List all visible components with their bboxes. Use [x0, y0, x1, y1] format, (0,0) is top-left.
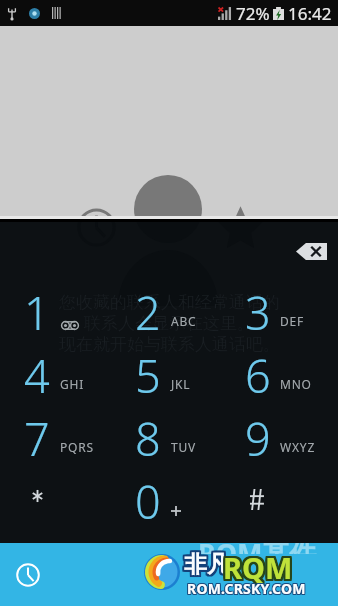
staticText: 非凡 [186, 549, 232, 578]
staticText: RQM [224, 547, 294, 586]
staticText: 非凡 [182, 552, 228, 581]
staticText: 非凡 [183, 552, 229, 581]
staticText: 1 [24, 282, 50, 343]
button[interactable]: 2 [112, 281, 225, 344]
staticText: 非凡 [184, 550, 230, 579]
staticText: RQM [225, 550, 295, 589]
button[interactable] [225, 470, 338, 533]
staticText: 3 [245, 282, 271, 343]
button[interactable]: 0 [112, 470, 225, 533]
button[interactable]: Backspace [291, 236, 331, 266]
staticText: RQM [222, 548, 292, 587]
staticText: 非凡 [182, 548, 228, 577]
staticText: 0 [135, 471, 161, 532]
staticText: 非凡 [186, 551, 232, 580]
staticText: RQM [222, 547, 292, 586]
staticText: 7 [24, 408, 50, 469]
staticText: RQM [225, 547, 295, 586]
staticText: 非凡 [184, 552, 230, 581]
staticText: RQM [221, 548, 291, 587]
staticText: 非凡 [185, 550, 231, 579]
staticText: 联系人会显示在这里。 [84, 313, 254, 334]
staticText: RQM [223, 548, 293, 587]
staticText: RQM [223, 547, 293, 586]
staticText: 非凡 [185, 548, 231, 577]
staticText: 非凡 [182, 550, 228, 579]
button[interactable]: 9 [225, 407, 338, 470]
staticText: 非凡 [183, 549, 229, 578]
staticText: ROM.CRSKY.COM [188, 580, 307, 599]
staticText: ROM.CRSKY.COM [186, 580, 305, 599]
staticText: ROM某件 [198, 543, 317, 554]
staticText: 非凡 [184, 551, 230, 580]
button[interactable]: 3 [225, 281, 338, 344]
staticText: 现在就开始与联系人通话吧。 [59, 334, 280, 355]
button[interactable]: 6 [225, 344, 338, 407]
button[interactable] [0, 470, 112, 533]
button[interactable]: 4 [0, 344, 112, 407]
staticText: 非凡 [186, 548, 232, 577]
staticText: ROM.CRSKY.COM [187, 580, 306, 599]
staticText: RQM [224, 549, 294, 588]
staticText: GHI [60, 376, 85, 392]
staticText: RQM [221, 547, 291, 586]
staticText: ROM.CRSKY.COM [186, 579, 305, 598]
staticText: 非凡 [184, 548, 230, 577]
staticText: 8 [135, 408, 161, 469]
staticText: ROM.CRSKY.COM [186, 578, 305, 597]
staticText: 非凡 [185, 552, 231, 581]
staticText: 非凡 [183, 550, 229, 579]
staticText: 非凡 [182, 549, 228, 578]
staticText: RQM [222, 549, 292, 588]
staticText: 9 [245, 408, 271, 469]
button[interactable]: 1 [0, 281, 112, 344]
staticText: 非凡 [185, 551, 231, 580]
staticText: 您收藏的联系人和经常通话的 [59, 292, 280, 313]
staticText: RQM [224, 548, 294, 587]
staticText: 16:42 [288, 2, 332, 25]
staticText: RQM [224, 550, 294, 589]
staticText: WXYZ [280, 439, 316, 455]
staticText: RQM [223, 546, 293, 585]
staticText: DEF [280, 313, 305, 329]
staticText: ROM.CRSKY.COM [187, 578, 306, 597]
staticText: 2 [135, 282, 161, 343]
staticText: 5 [135, 345, 161, 406]
button[interactable]: 5 [112, 344, 225, 407]
staticText: MNO [280, 376, 312, 392]
button[interactable]: 8 [112, 407, 225, 470]
staticText: 72% [236, 2, 270, 25]
staticText: 非凡 [185, 549, 231, 578]
staticText: ROM.CRSKY.COM [187, 579, 306, 598]
staticText: 6 [245, 345, 271, 406]
staticText: 非凡 [183, 548, 229, 577]
staticText: 非凡 [182, 551, 228, 580]
staticText: ROM.CRSKY.COM [188, 578, 307, 597]
staticText: ABC [171, 313, 197, 329]
staticText: 非凡 [184, 549, 230, 578]
staticText: RQM [224, 546, 294, 585]
staticText: JKL [171, 376, 191, 392]
staticText: ROM.CRSKY.COM [188, 579, 307, 598]
staticText: PQRS [60, 439, 94, 455]
staticText: RQM [223, 549, 293, 588]
staticText: 非凡 [186, 550, 232, 579]
staticText: RQM [223, 550, 293, 589]
staticText: RQM [221, 550, 291, 589]
staticText: RQM [225, 549, 295, 588]
staticText: TUV [171, 439, 197, 455]
staticText: RQM [222, 546, 292, 585]
staticText: ROM.CRSKY.COM [187, 579, 306, 598]
staticText: RQM [225, 546, 295, 585]
staticText: 4 [24, 345, 50, 406]
staticText: RQM [221, 546, 291, 585]
staticText: RQM [225, 548, 295, 587]
button[interactable]: Call history [10, 557, 46, 593]
staticText: RQM [222, 550, 292, 589]
staticText: RQM [221, 549, 291, 588]
staticText: 非凡 [186, 552, 232, 581]
button[interactable]: 7 [0, 407, 112, 470]
staticText: 非凡 [183, 551, 229, 580]
